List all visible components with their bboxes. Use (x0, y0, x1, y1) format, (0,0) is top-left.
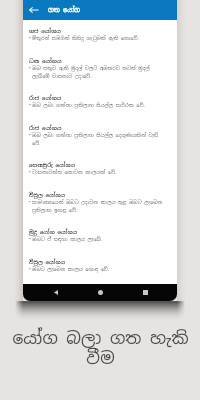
button[interactable]: රාජ යෝගය (29, 124, 166, 161)
button[interactable]: ගජ යෝගය (29, 27, 166, 57)
button[interactable]: විපුල යෝගය (29, 258, 166, 284)
staticText: • (29, 236, 31, 243)
button[interactable]: Home (88, 284, 112, 301)
button[interactable]: විපුල යෝගය (29, 191, 166, 228)
staticText: සෙනසුරු යෝගය (29, 161, 76, 168)
button[interactable]: මුදු යෝග යෝගය (29, 228, 166, 258)
staticText: ඔබ සතුව ඇති මුදල් වලට අමතරව තවත් මුදල් ල… (32, 65, 166, 79)
staticText: • (29, 132, 31, 139)
button[interactable]: රාජ යෝගය (29, 94, 166, 124)
staticText: • (29, 102, 31, 109)
staticText: ඔබ ලබා ගන්නා ප්‍රතිලාභ සියල්ල දෙගුණයකින්… (32, 132, 166, 146)
staticText: රාජ යෝගය (29, 124, 62, 131)
staticText: ඔබට ඒ සඳහා කාලය ලැබේ. (32, 236, 103, 243)
staticText: ඔබ ලබා ගන්නා ප්‍රතිලාභ සියල්ල සාර්ථක වේ. (32, 102, 145, 109)
button[interactable]: Back (23, 0, 44, 20)
staticText: • (29, 199, 31, 206)
staticText: • (29, 35, 31, 42)
staticText: • (29, 266, 31, 273)
staticText: • (29, 65, 31, 72)
staticText: ගත යෝග (48, 6, 81, 14)
staticText: ඔබට ලැබෙන කාලය හොඳ වේ. (32, 266, 110, 273)
staticText: • (29, 169, 31, 176)
staticText: මිතුරන් සමගින් කිසිදු ගැටුමක් ඇති නොවේ. (32, 35, 139, 42)
staticText: මුදු යෝග යෝගය (29, 228, 77, 235)
staticText: ගජ යෝගය (29, 27, 61, 34)
staticText: ධන යෝගය (29, 57, 62, 64)
staticText: යෝග බලා ගත හැකි වීම (12, 327, 189, 369)
staticText: රාජ යෝගය (29, 94, 62, 101)
button[interactable]: සෙනසුරු යෝගය (29, 161, 166, 191)
button[interactable]: Recent apps (133, 284, 157, 301)
staticText: විපුල යෝගය (29, 258, 66, 265)
button[interactable]: Back (44, 284, 68, 301)
staticText: වාසනාවන්ත නොවන කාලයක් වේ. (32, 169, 117, 176)
button[interactable]: ධන යෝගය (29, 57, 166, 94)
staticText: සාමාන්‍යයෙන් ඔබට උදාවන කාලය තුළ ඔබට ලැබෙ… (32, 199, 166, 213)
staticText: විපුල යෝගය (29, 191, 66, 198)
